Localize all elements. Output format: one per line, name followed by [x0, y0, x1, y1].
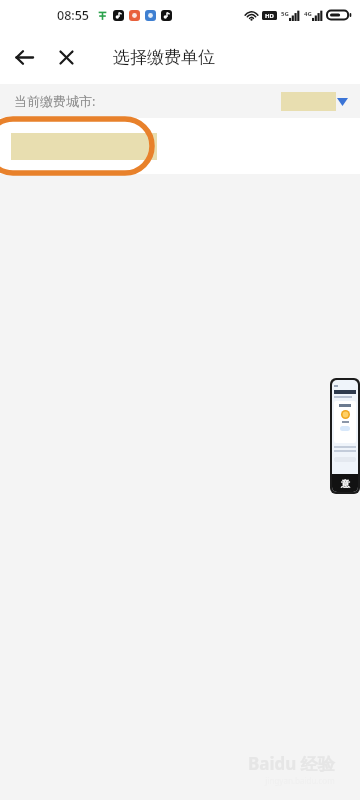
staticText: 08:55: [57, 7, 90, 24]
staticText: 5G: [281, 10, 289, 18]
button[interactable]: 关闭: [48, 39, 84, 75]
staticText: 选择缴费单位: [113, 47, 215, 68]
staticText: 当前缴费城市:: [14, 92, 96, 110]
staticText: 意: [341, 478, 350, 489]
button[interactable]: [0, 118, 360, 174]
staticText: 4G: [304, 10, 312, 18]
staticText: HD: [265, 12, 274, 20]
staticText: Baidu 经验: [248, 752, 335, 775]
button[interactable]: 当前缴费城市:: [0, 84, 360, 118]
button[interactable]: 返回: [6, 39, 42, 75]
